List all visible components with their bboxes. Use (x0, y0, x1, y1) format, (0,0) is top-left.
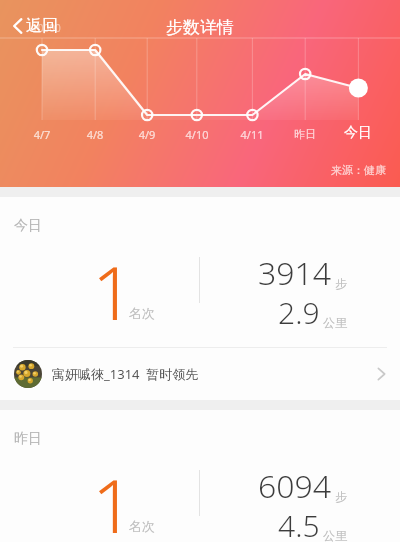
staticText: 1 (92, 454, 135, 542)
staticText: 10000 (32, 21, 61, 35)
staticText: 4/7 (16, 127, 68, 142)
button[interactable]: 寓妍嘁徠_1314 暂时领先 (0, 348, 400, 400)
staticText: 4.5 (278, 505, 320, 542)
staticText: 返回 (26, 16, 58, 36)
staticText: 4/11 (226, 127, 278, 142)
staticText: 昨日 (14, 430, 42, 448)
staticText: 今日 (332, 124, 384, 142)
staticText: 寓妍嘁徠_1314 暂时领先 (52, 365, 199, 383)
staticText: 公里 (323, 528, 347, 542)
button[interactable]: 返回 (6, 12, 64, 40)
staticText: 6094 (258, 464, 332, 508)
staticText: 名次 (129, 518, 155, 534)
staticText: 步 (335, 276, 347, 291)
other: 查看排行榜 (377, 366, 386, 382)
staticText: 1 (92, 241, 135, 342)
staticText: 4/8 (69, 127, 121, 142)
staticText: 步数详情 (0, 17, 400, 38)
staticText: 4/10 (171, 127, 223, 142)
staticText: 名次 (129, 305, 155, 321)
staticText: 步 (335, 489, 347, 504)
staticText: 2.9 (278, 292, 320, 333)
staticText: 3914 (258, 251, 332, 295)
staticText: 公里 (323, 315, 347, 330)
staticText: 来源：健康 (331, 163, 386, 177)
staticText: 今日 (14, 217, 42, 235)
staticText: 昨日 (279, 127, 331, 141)
staticText: 4/9 (121, 127, 173, 142)
